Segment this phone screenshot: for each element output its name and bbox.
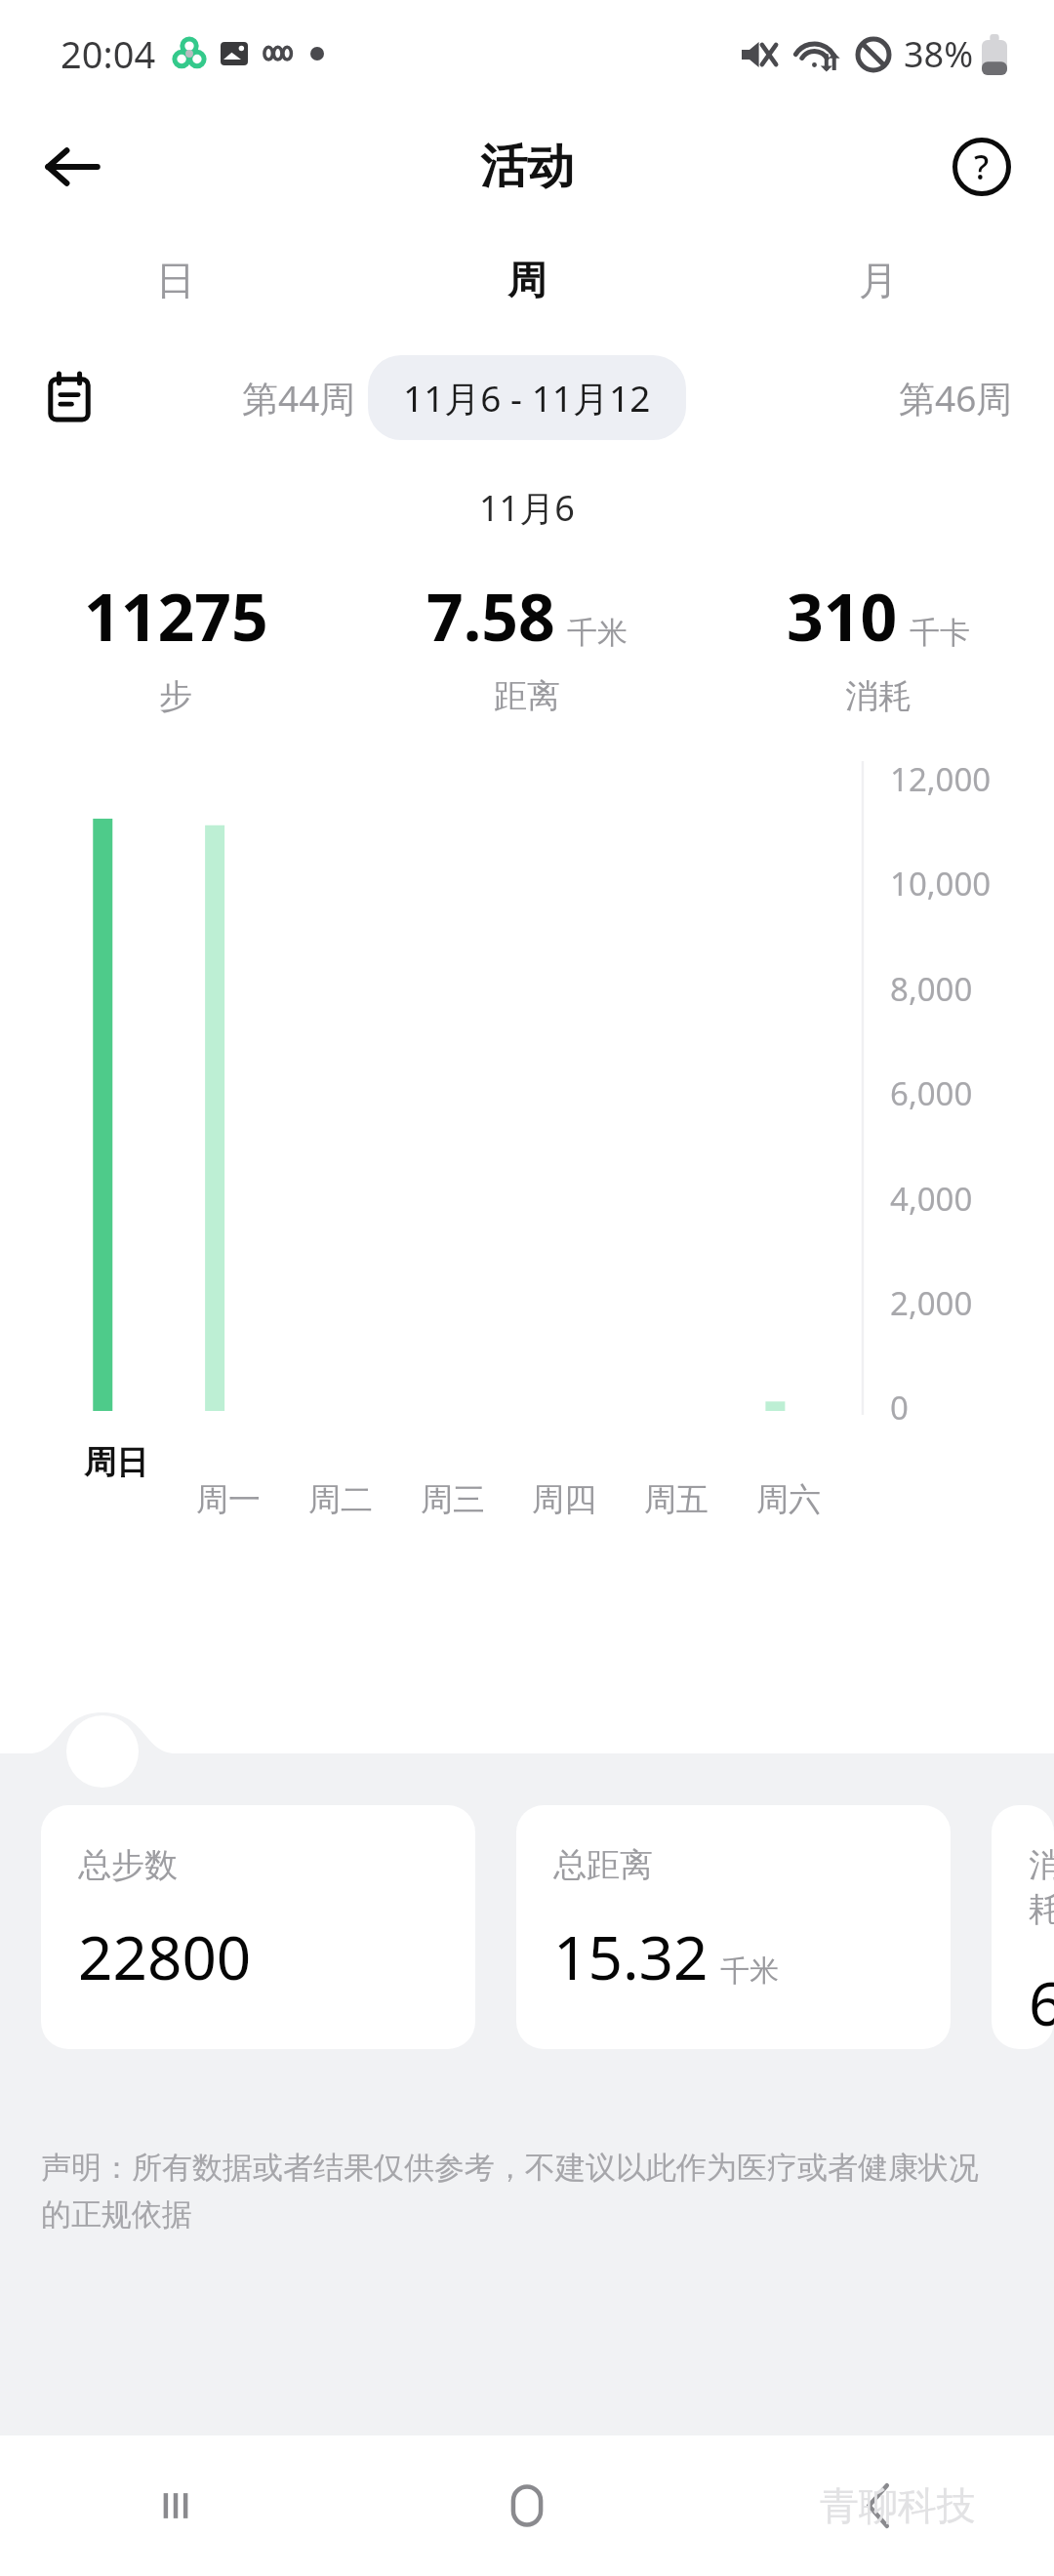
- button[interactable]: 周五: [644, 1479, 709, 1520]
- staticText: 步: [159, 675, 192, 717]
- staticText: 15.32: [553, 1915, 709, 1997]
- staticText: ?: [974, 144, 990, 189]
- button[interactable]: 月: [703, 226, 1054, 334]
- staticText: 千米: [720, 1952, 779, 1990]
- button[interactable]: 周二: [308, 1479, 373, 1520]
- button[interactable]: 日: [0, 226, 351, 334]
- button[interactable]: Help: [937, 122, 1027, 212]
- button[interactable]: Calendar: [35, 363, 103, 431]
- staticText: 周三: [421, 1479, 485, 1520]
- staticText: 22800: [78, 1915, 252, 1997]
- staticText: 11月6: [479, 484, 575, 532]
- button[interactable]: Back: [25, 120, 119, 214]
- staticText: 第46周: [899, 373, 1013, 423]
- staticText: 0: [890, 1386, 909, 1429]
- staticText: 周日: [84, 1442, 148, 1483]
- button[interactable]: 第46周: [887, 363, 1025, 432]
- staticText: 6,000: [890, 1071, 973, 1115]
- button[interactable]: 总步数: [41, 1805, 475, 2049]
- staticText: 第44周: [242, 373, 356, 423]
- staticText: 消耗: [845, 675, 912, 717]
- staticText: 周五: [644, 1479, 709, 1520]
- staticText: 活动: [480, 138, 574, 196]
- button[interactable]: 总距离: [516, 1805, 951, 2049]
- button[interactable]: 周: [351, 226, 703, 334]
- staticText: 消耗: [1029, 1844, 1054, 1930]
- staticText: 38%: [904, 30, 974, 78]
- staticText: 20:04: [61, 28, 156, 79]
- staticText: 2,000: [890, 1281, 973, 1325]
- staticText: 青聊科技: [820, 2481, 976, 2530]
- button[interactable]: 消耗: [992, 1805, 1054, 2049]
- staticText: 6: [1029, 1961, 1054, 2043]
- staticText: 总距离: [553, 1844, 653, 1886]
- staticText: 10,000: [890, 862, 992, 906]
- staticText: 8,000: [890, 967, 973, 1011]
- staticText: 千米: [567, 614, 628, 652]
- staticText: 4,000: [890, 1177, 973, 1221]
- button[interactable]: 周日: [84, 1442, 148, 1483]
- button[interactable]: 周四: [532, 1479, 596, 1520]
- staticText: 距离: [494, 675, 560, 717]
- staticText: 周四: [532, 1479, 596, 1520]
- staticText: 周: [507, 256, 547, 304]
- button[interactable]: Recent apps: [0, 2435, 351, 2576]
- staticText: 周六: [756, 1479, 821, 1520]
- button[interactable]: 11月6 - 11月12: [368, 355, 686, 440]
- staticText: 7.58: [426, 572, 555, 660]
- staticText: 日: [156, 256, 195, 304]
- staticText: 总步数: [78, 1844, 178, 1886]
- button[interactable]: 周六: [756, 1479, 821, 1520]
- staticText: 12,000: [890, 757, 992, 801]
- staticText: 11275: [84, 572, 268, 660]
- button[interactable]: 第44周: [230, 363, 368, 432]
- button[interactable]: Back: [703, 2435, 1054, 2576]
- staticText: 周一: [196, 1479, 261, 1520]
- staticText: 11月6 - 11月12: [403, 373, 651, 423]
- button[interactable]: 周三: [421, 1479, 485, 1520]
- staticText: 310: [787, 572, 898, 660]
- staticText: 声明：所有数据或者结果仅供参考，不建议以此作为医疗或者健康状况的正规依据: [41, 2149, 995, 2234]
- staticText: 月: [859, 256, 898, 304]
- button[interactable]: Home: [351, 2435, 703, 2576]
- staticText: 千卡: [910, 614, 970, 652]
- staticText: 周二: [308, 1479, 373, 1520]
- button[interactable]: 周一: [196, 1479, 261, 1520]
